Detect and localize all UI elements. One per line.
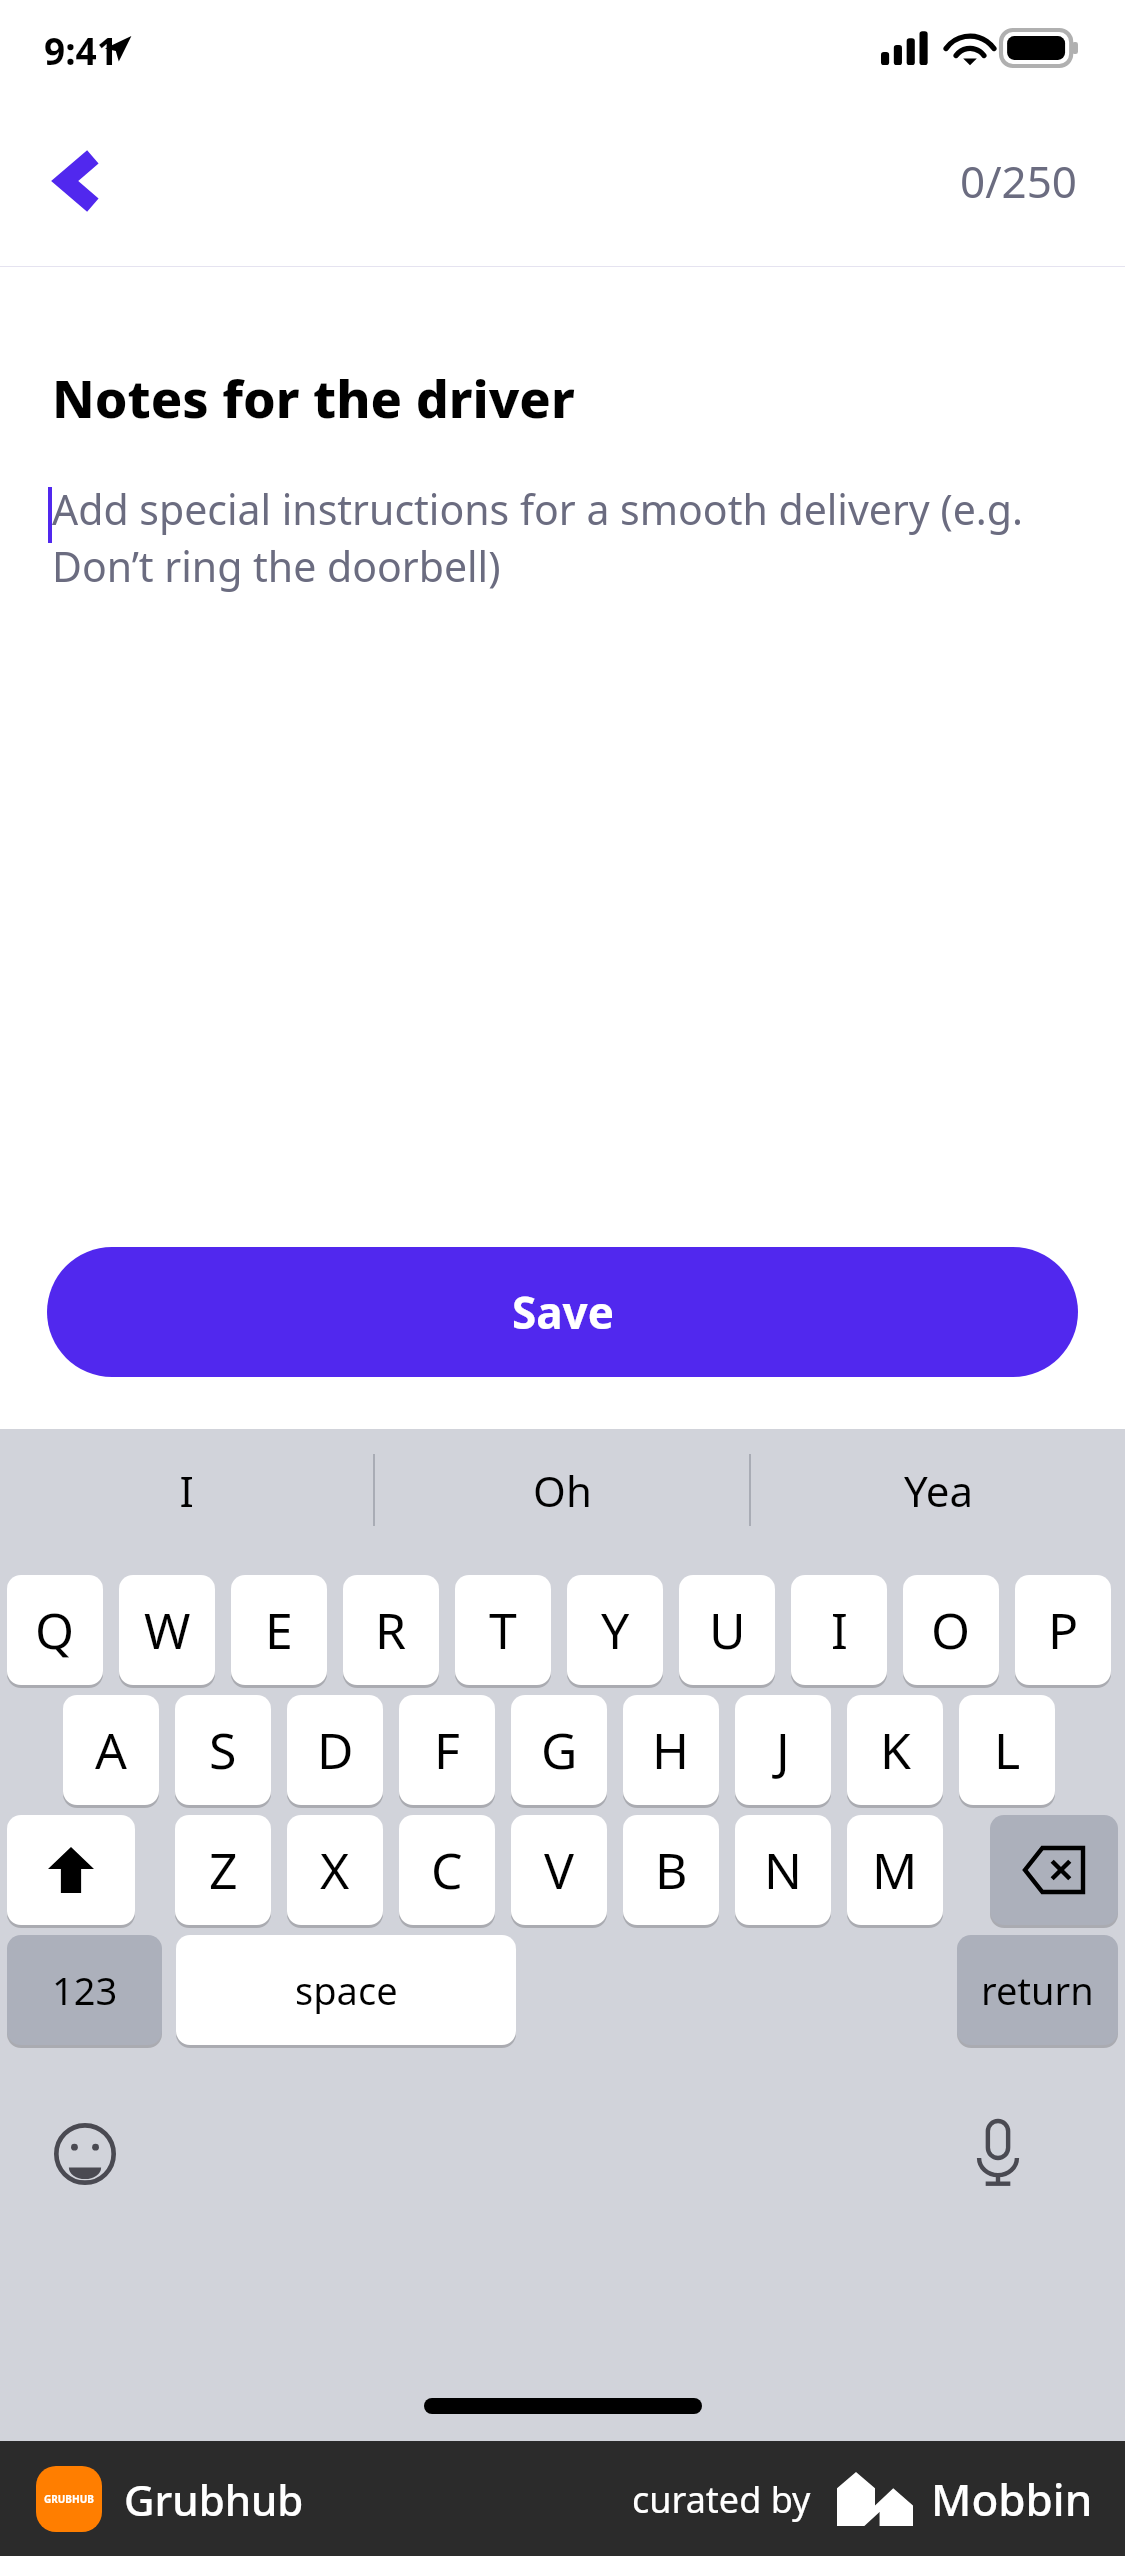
staticText: T bbox=[489, 1596, 517, 1664]
button[interactable]: Back bbox=[22, 126, 132, 236]
button[interactable]: P bbox=[1015, 1575, 1111, 1685]
staticText: 123 bbox=[52, 1964, 118, 2016]
staticText: B bbox=[655, 1836, 688, 1904]
staticText: curated by bbox=[632, 2475, 811, 2524]
button[interactable]: Shift bbox=[7, 1815, 135, 1925]
button[interactable]: W bbox=[119, 1575, 215, 1685]
staticText: space bbox=[295, 1964, 398, 2016]
staticText: Z bbox=[209, 1836, 238, 1904]
staticText: H bbox=[652, 1716, 690, 1784]
button[interactable]: Yea bbox=[751, 1429, 1125, 1551]
button[interactable]: R bbox=[343, 1575, 439, 1685]
staticText: P bbox=[1048, 1596, 1079, 1664]
staticText: M bbox=[872, 1836, 918, 1904]
staticText: I bbox=[179, 1462, 194, 1519]
staticText: W bbox=[144, 1596, 191, 1664]
button[interactable]: return bbox=[957, 1935, 1118, 2045]
button[interactable]: X bbox=[287, 1815, 383, 1925]
staticText: Yea bbox=[904, 1462, 973, 1519]
button[interactable]: Dictation bbox=[955, 2111, 1041, 2197]
staticText: return bbox=[981, 1964, 1094, 2016]
button[interactable]: I bbox=[0, 1429, 373, 1551]
button[interactable]: V bbox=[511, 1815, 607, 1925]
staticText: Add special instructions for a smooth de… bbox=[52, 481, 1085, 594]
staticText: GRUBHUB bbox=[44, 2492, 94, 2506]
staticText: C bbox=[431, 1836, 463, 1904]
button[interactable]: S bbox=[175, 1695, 271, 1805]
button[interactable]: B bbox=[623, 1815, 719, 1925]
staticText: R bbox=[375, 1596, 407, 1664]
staticText: O bbox=[931, 1596, 971, 1664]
button[interactable]: K bbox=[847, 1695, 943, 1805]
button[interactable]: Y bbox=[567, 1575, 663, 1685]
staticText: S bbox=[209, 1716, 237, 1784]
staticText: Oh bbox=[533, 1462, 592, 1519]
staticText: G bbox=[541, 1716, 578, 1784]
staticText: 9:41 bbox=[44, 25, 118, 75]
staticText: Notes for the driver bbox=[52, 362, 575, 433]
staticText: X bbox=[320, 1836, 350, 1904]
button[interactable]: Emoji keyboard bbox=[42, 2111, 128, 2197]
button[interactable]: G bbox=[511, 1695, 607, 1805]
button[interactable]: E bbox=[231, 1575, 327, 1685]
button[interactable]: N bbox=[735, 1815, 831, 1925]
button[interactable]: L bbox=[959, 1695, 1055, 1805]
button[interactable]: D bbox=[287, 1695, 383, 1805]
staticText: Q bbox=[35, 1596, 75, 1664]
staticText: 0/250 bbox=[960, 151, 1078, 211]
staticText: N bbox=[764, 1836, 802, 1904]
button[interactable]: M bbox=[847, 1815, 943, 1925]
staticText: L bbox=[994, 1716, 1021, 1784]
button[interactable]: U bbox=[679, 1575, 775, 1685]
staticText: A bbox=[95, 1716, 127, 1784]
button[interactable]: Save bbox=[47, 1247, 1078, 1377]
staticText: Y bbox=[601, 1596, 630, 1664]
staticText: D bbox=[317, 1716, 354, 1784]
button[interactable]: 123 bbox=[7, 1935, 162, 2045]
staticText: Grubhub bbox=[124, 2471, 304, 2528]
staticText: I bbox=[831, 1596, 848, 1664]
button[interactable]: I bbox=[791, 1575, 887, 1685]
staticText: V bbox=[544, 1836, 574, 1904]
button[interactable]: Oh bbox=[375, 1429, 749, 1551]
staticText: K bbox=[880, 1716, 911, 1784]
button[interactable]: T bbox=[455, 1575, 551, 1685]
staticText: U bbox=[709, 1596, 746, 1664]
button[interactable]: F bbox=[399, 1695, 495, 1805]
staticText: Mobbin bbox=[931, 2469, 1093, 2529]
button[interactable]: A bbox=[63, 1695, 159, 1805]
button[interactable]: J bbox=[735, 1695, 831, 1805]
button[interactable]: Backspace bbox=[990, 1815, 1118, 1925]
button[interactable]: C bbox=[399, 1815, 495, 1925]
button[interactable]: Q bbox=[7, 1575, 103, 1685]
button[interactable]: H bbox=[623, 1695, 719, 1805]
button[interactable]: space bbox=[176, 1935, 516, 2045]
button[interactable]: O bbox=[903, 1575, 999, 1685]
button[interactable]: Z bbox=[175, 1815, 271, 1925]
staticText: E bbox=[265, 1596, 293, 1664]
staticText: F bbox=[434, 1716, 460, 1784]
staticText: Save bbox=[512, 1282, 614, 1342]
staticText: J bbox=[776, 1716, 790, 1784]
